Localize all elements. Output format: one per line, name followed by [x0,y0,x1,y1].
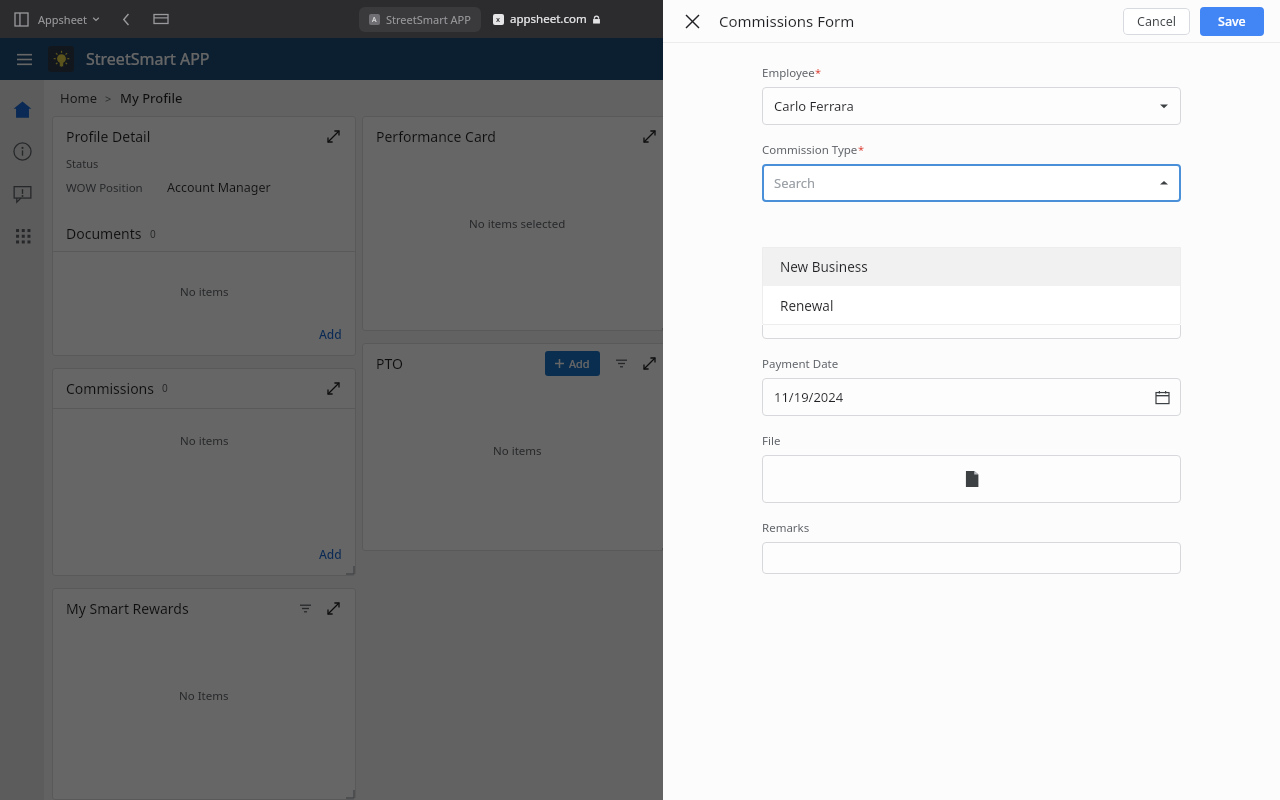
staticText: 0 [162,381,168,395]
staticText: 11/19/2024 [774,388,844,406]
staticText: Commission Month [762,279,868,295]
staticText: Performance Card [376,127,496,146]
staticText: * [858,142,865,157]
button[interactable]: Search [762,164,1181,202]
button[interactable]: A [359,7,481,32]
staticText: Documents [66,224,142,243]
button[interactable]: Renewal [762,286,1181,325]
staticText: StreetSmart APP [86,48,210,70]
button[interactable]: Apps [0,214,44,256]
button[interactable]: Cancel [1123,8,1190,35]
button[interactable]: Downloads [1134,9,1154,29]
button[interactable]: Share [1172,9,1192,29]
staticText: * [815,65,822,80]
staticText: My Profile [120,89,183,107]
button[interactable]: Filter [612,354,630,372]
button[interactable]: Carlo Ferrara [762,87,1181,125]
button[interactable]: x [493,11,601,27]
button[interactable]: Filter [296,599,314,617]
button[interactable]: Add [305,532,356,576]
button[interactable]: Expand [640,354,658,372]
staticText: No items [493,443,542,459]
button[interactable]: Expand [324,599,342,617]
staticText: No items [180,284,229,300]
staticText: A [372,15,377,25]
staticText: Search [774,174,816,192]
button[interactable]: Back [116,9,136,29]
staticText: Profile Detail [66,127,151,146]
staticText: x [496,15,501,25]
staticText: Appsheet - Goo... [848,12,937,27]
staticText: WOW Position [66,180,143,196]
staticText: Status [66,156,99,171]
staticText: No Items [179,688,229,704]
staticText: Cancel [1137,13,1176,30]
button[interactable]: Close [679,8,705,34]
button[interactable]: Sidebar [12,10,30,28]
staticText: File [762,433,781,449]
button[interactable]: Reader [788,9,808,29]
staticText: appsheet.com [510,11,587,27]
button[interactable]: Add [305,312,356,356]
button[interactable]: Info [0,130,44,172]
staticText: Commissions Form [719,11,855,31]
staticText: New Business [780,258,868,276]
staticText: > [105,91,112,106]
staticText: My Smart Rewards [66,599,189,618]
button[interactable]: Appsheet - Goo... [822,7,947,32]
button[interactable] [762,301,1181,339]
button[interactable]: New tab [1210,9,1230,29]
staticText: Appsheet [38,12,88,27]
staticText: Save [1218,13,1246,30]
button[interactable]: Expand [324,379,342,397]
button[interactable]: Tabs [1248,9,1268,29]
staticText: Carlo Ferrara [774,97,854,115]
staticText: Renewal [780,297,834,315]
staticText: Commission Type [762,142,858,158]
staticText: No items [180,433,229,449]
staticText: Remarks [762,520,810,536]
staticText: PTO [376,354,403,373]
staticText: No items selected [469,216,566,232]
staticText: Account Manager [167,179,271,196]
button[interactable]: Menu [12,47,36,71]
staticText: Commissions [66,379,154,398]
button[interactable]: Expand [640,127,658,145]
staticText: StreetSmart APP [386,12,471,27]
button[interactable]: Feedback [0,172,44,214]
staticText: Payment Date [762,356,839,372]
button[interactable]: Add [545,351,600,376]
button[interactable]: Tab overview [150,8,172,30]
button[interactable] [762,455,1181,503]
staticText: 0 [150,227,156,241]
button[interactable] [762,542,1181,574]
button[interactable]: Home [0,88,44,130]
button[interactable]: Expand [324,127,342,145]
staticText: Add [569,356,590,371]
button[interactable]: 11/19/2024 [762,378,1181,416]
staticText: Employee [762,65,815,81]
button[interactable]: Save [1200,7,1264,36]
button[interactable]: New Business [762,247,1181,286]
button[interactable]: Home [60,89,97,107]
